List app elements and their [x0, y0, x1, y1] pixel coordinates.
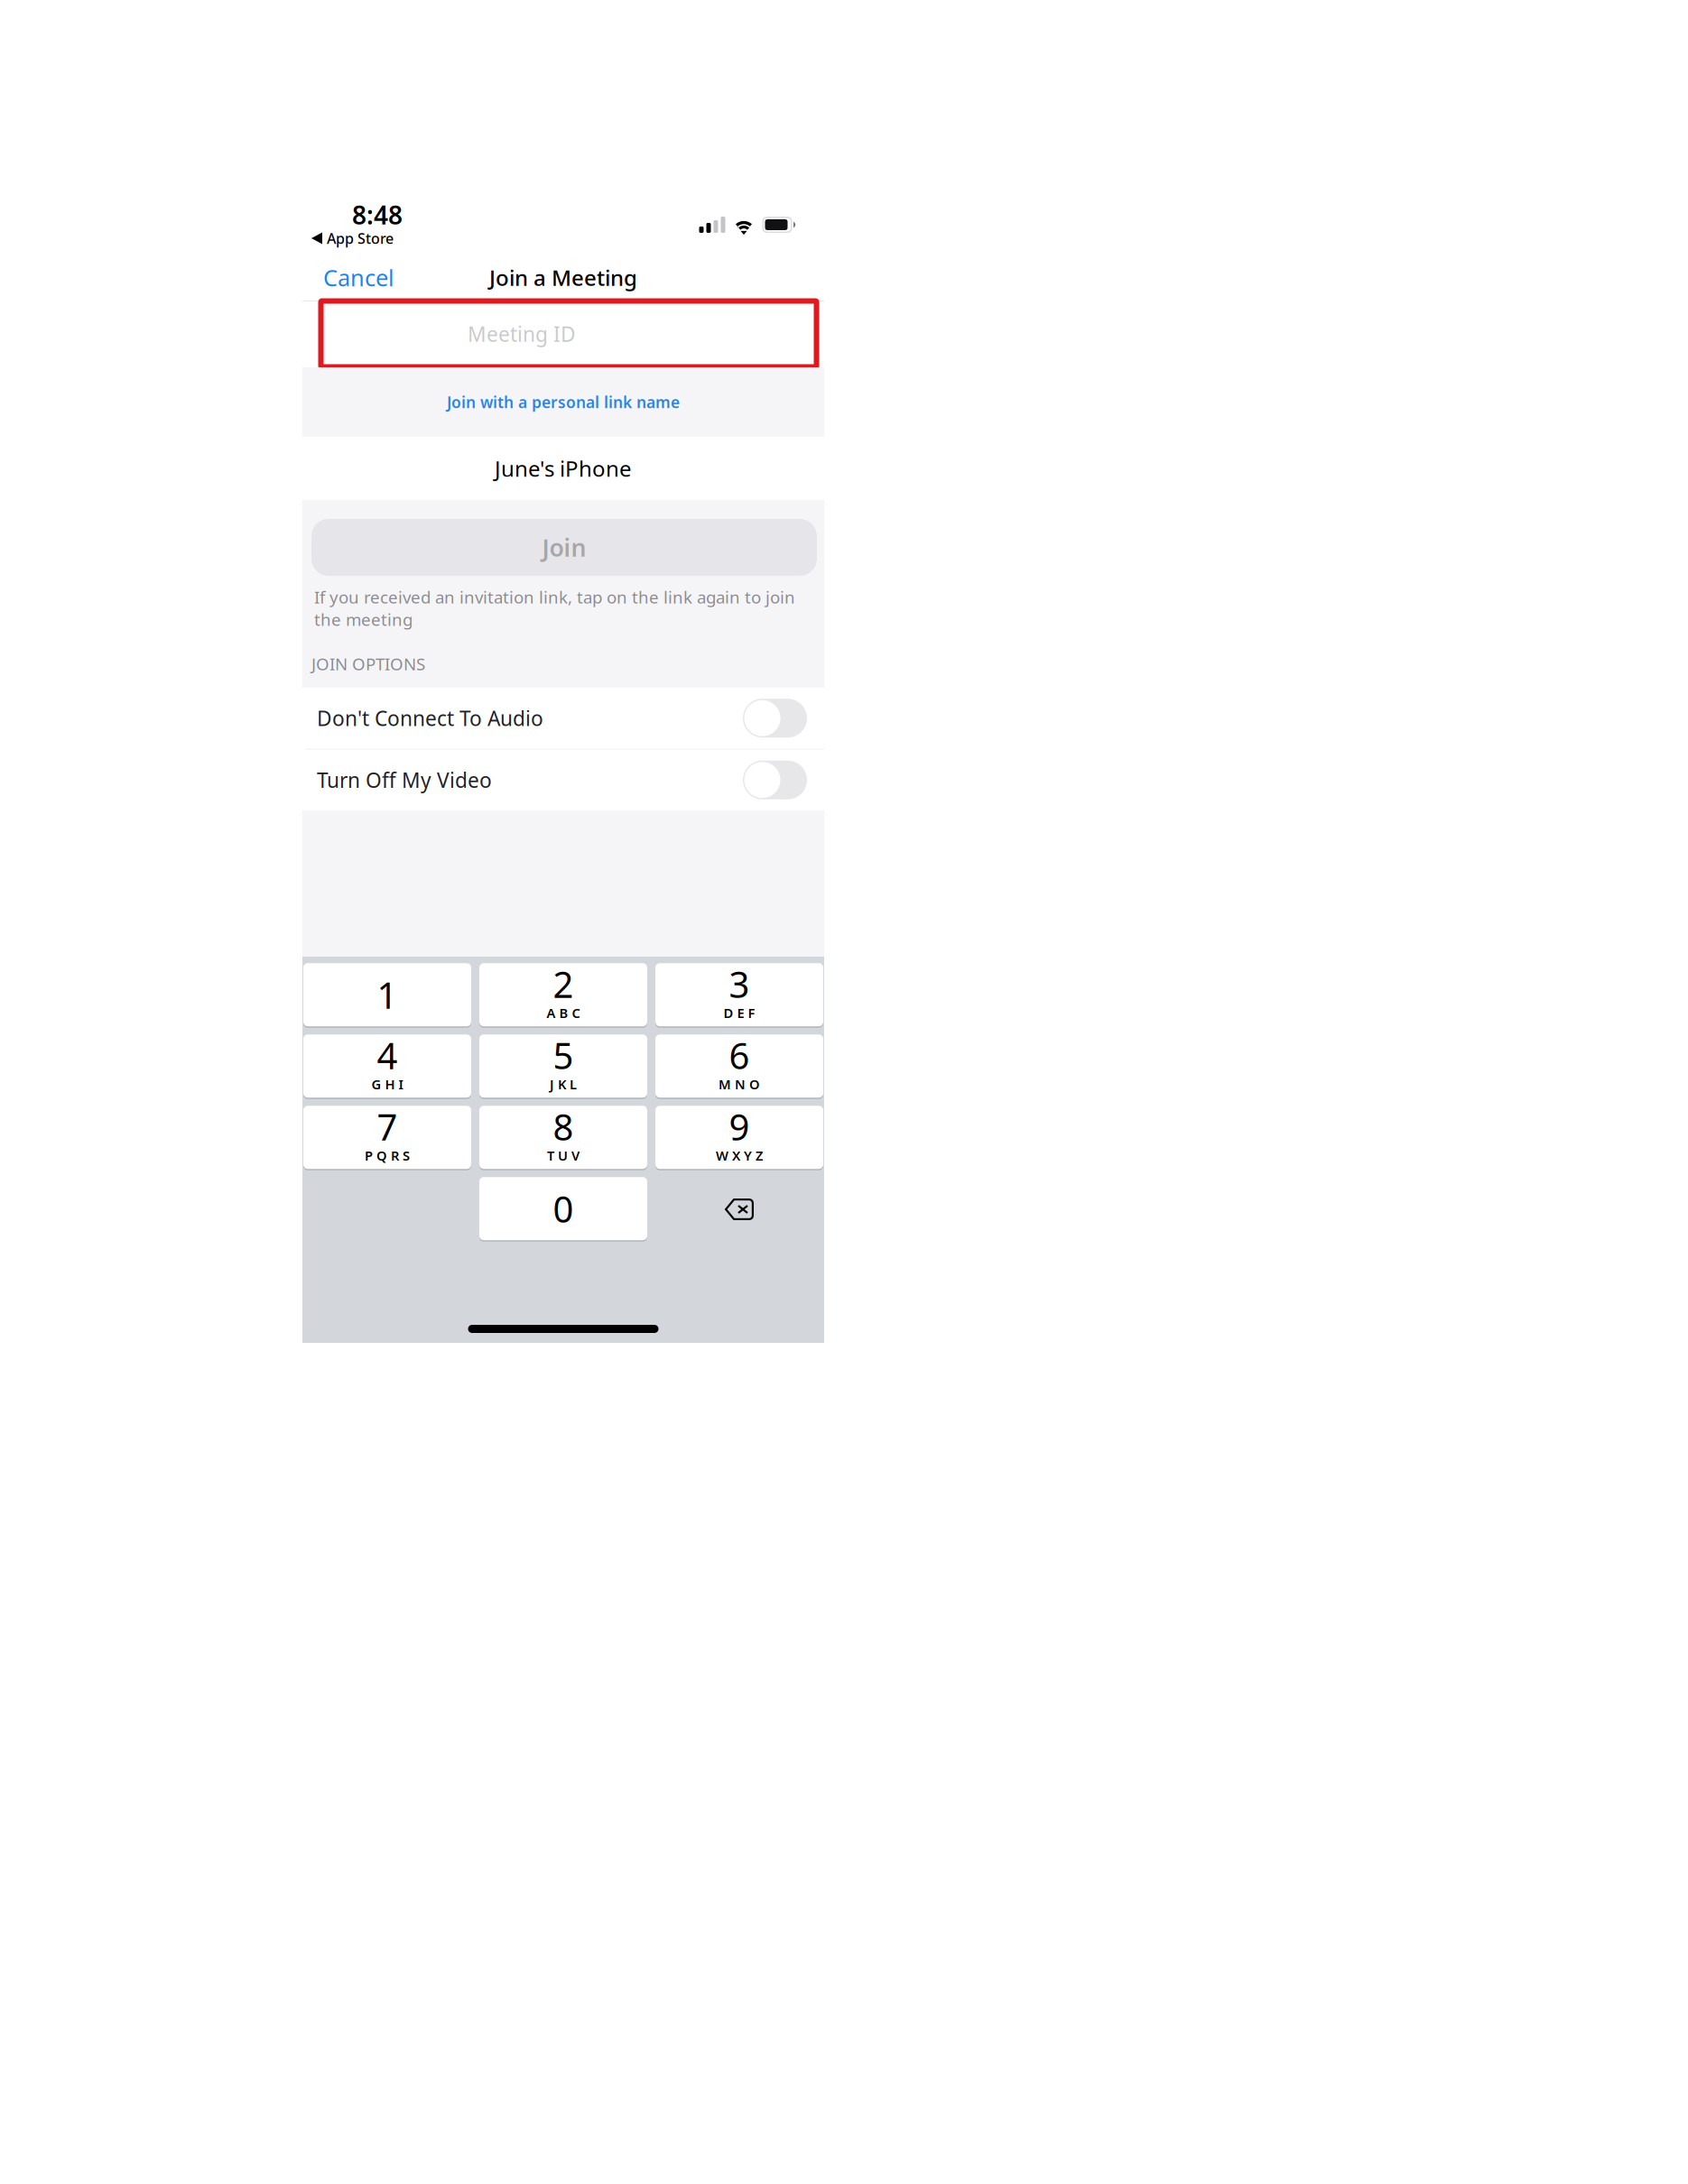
- staticText: G H I: [371, 1075, 403, 1093]
- staticText: 2: [553, 960, 574, 1008]
- button[interactable]: Cancel: [302, 254, 441, 301]
- button[interactable]: 2: [479, 964, 647, 1027]
- staticText: D E F: [723, 1004, 755, 1022]
- staticText: 5: [553, 1031, 574, 1079]
- button[interactable]: Join with a personal link name: [302, 367, 824, 437]
- button[interactable]: Turn Off My Video: [302, 750, 824, 810]
- button[interactable]: 6: [655, 1035, 823, 1098]
- button[interactable]: 0: [479, 1178, 647, 1241]
- button[interactable]: Don't Connect To Audio: [302, 688, 824, 749]
- staticText: Join with a personal link name: [447, 392, 680, 412]
- staticText: 9: [729, 1103, 750, 1150]
- staticText: JOIN OPTIONS: [311, 653, 425, 675]
- button[interactable]: Screen name: [302, 437, 824, 500]
- staticText: Join: [542, 531, 586, 563]
- staticText: P Q R S: [365, 1147, 410, 1164]
- staticText: 0: [553, 1185, 574, 1233]
- button[interactable]: 5: [479, 1035, 647, 1098]
- staticText: 1: [377, 971, 398, 1019]
- staticText: 7: [377, 1103, 398, 1150]
- button[interactable]: Delete: [655, 1178, 823, 1241]
- staticText: App Store: [327, 229, 394, 248]
- button[interactable]: 1: [303, 964, 471, 1027]
- staticText: Cancel: [323, 262, 394, 293]
- staticText: If you received an invitation link, tap …: [314, 586, 795, 630]
- staticText: T U V: [547, 1147, 580, 1164]
- button[interactable]: 8: [479, 1106, 647, 1170]
- staticText: Meeting ID: [468, 320, 576, 347]
- staticText: M N O: [719, 1075, 760, 1093]
- staticText: Turn Off My Video: [317, 766, 492, 794]
- staticText: 8: [553, 1103, 574, 1150]
- button[interactable]: 7: [303, 1106, 471, 1170]
- staticText: A B C: [547, 1004, 580, 1022]
- staticText: 6: [729, 1031, 750, 1079]
- button[interactable]: 3: [655, 964, 823, 1027]
- button[interactable]: 4: [303, 1035, 471, 1098]
- button[interactable]: App Store: [302, 177, 411, 245]
- staticText: 3: [729, 960, 750, 1008]
- button[interactable]: Join: [311, 519, 817, 576]
- staticText: Don't Connect To Audio: [317, 705, 543, 732]
- staticText: J K L: [550, 1075, 577, 1093]
- staticText: 4: [377, 1031, 398, 1079]
- staticText: W X Y Z: [716, 1147, 763, 1164]
- button[interactable]: 9: [655, 1106, 823, 1170]
- button[interactable]: Meeting ID: [302, 301, 824, 367]
- staticText: June's iPhone: [495, 454, 632, 483]
- staticText: 8:48: [352, 198, 403, 232]
- staticText: Join a Meeting: [489, 263, 637, 292]
